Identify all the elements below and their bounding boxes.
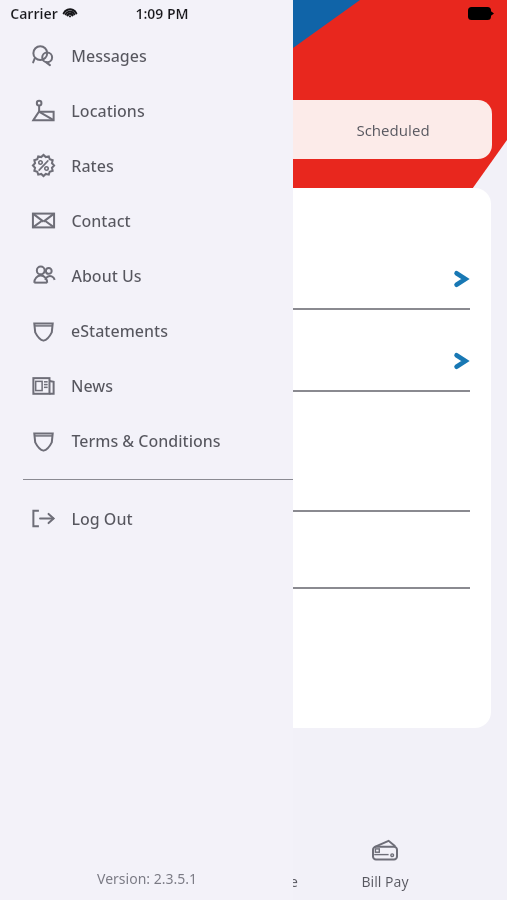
button[interactable]: essage [220, 826, 330, 900]
staticText: eStatements [71, 320, 168, 342]
staticText: Bill Pay [361, 872, 409, 891]
button[interactable]: Terms & Conditions [0, 413, 293, 468]
button[interactable]: Locations [0, 83, 293, 138]
staticText: Version: 2.3.5.1 [97, 869, 197, 888]
button[interactable]: Open item [293, 249, 491, 309]
staticText: Scheduled [356, 120, 430, 140]
staticText: Log Out [71, 508, 133, 530]
staticText: Carrier [10, 4, 58, 23]
staticText: essage [252, 872, 298, 891]
staticText: About Us [71, 265, 142, 287]
button[interactable]: Open item [293, 331, 491, 391]
button[interactable]: Messages [0, 28, 293, 83]
button[interactable]: Scheduled [293, 100, 492, 159]
button[interactable]: About Us [0, 248, 293, 303]
staticText: Terms & Conditions [71, 430, 221, 452]
button[interactable]: Bill Pay [330, 826, 440, 900]
staticText: Contact [71, 210, 131, 232]
staticText: 1:09 PM [135, 4, 189, 23]
staticText: Locations [71, 100, 145, 122]
button[interactable]: Log Out [0, 491, 293, 546]
button[interactable]: eStatements [0, 303, 293, 358]
staticText: Messages [71, 45, 147, 67]
button[interactable]: News [0, 358, 293, 413]
staticText: Rates [71, 155, 114, 177]
button[interactable]: Rates [0, 138, 293, 193]
staticText: News [71, 375, 113, 397]
button[interactable]: Contact [0, 193, 293, 248]
